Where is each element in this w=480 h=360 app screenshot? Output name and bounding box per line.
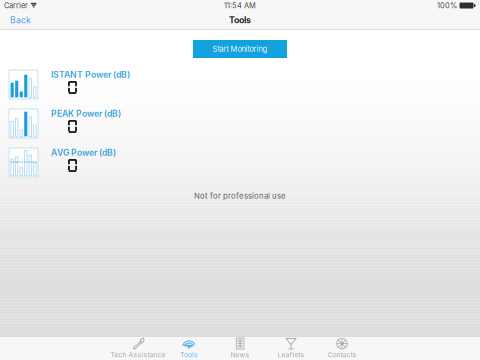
button[interactable]: Contacts: [316, 336, 367, 360]
staticText: Start Monitoring: [212, 44, 267, 53]
staticText: 100%: [437, 1, 457, 10]
button[interactable]: Tech Assistance: [112, 336, 163, 360]
staticText: Tech Assistance: [110, 351, 165, 359]
staticText: News: [230, 351, 249, 359]
staticText: ISTANT Power (dB): [51, 69, 130, 80]
button[interactable]: Tools: [163, 336, 214, 360]
staticText: AVG Power (dB): [51, 147, 116, 158]
button[interactable]: Start Monitoring: [193, 40, 287, 58]
button[interactable]: Back: [4, 12, 60, 28]
button[interactable]: Leaflets: [265, 336, 316, 360]
staticText: Back: [10, 15, 31, 25]
staticText: Tools: [180, 351, 198, 359]
staticText: 11:54 AM: [224, 1, 256, 10]
staticText: Contacts: [327, 351, 356, 359]
staticText: Not for professional use: [194, 191, 286, 201]
staticText: Tools: [229, 15, 251, 25]
button[interactable]: News: [214, 336, 265, 360]
staticText: Leaflets: [277, 351, 304, 359]
staticText: PEAK Power (dB): [51, 108, 121, 119]
staticText: Carrier: [4, 1, 28, 10]
